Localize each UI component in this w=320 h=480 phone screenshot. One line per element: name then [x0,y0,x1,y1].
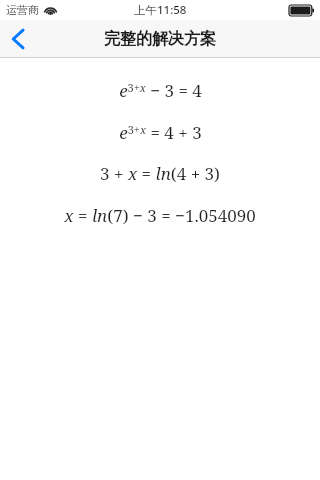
staticText: e3+x − 3 = 4 [119,79,202,99]
staticText: 3 + x = ln(4 + 3) [100,162,220,182]
staticText: 运营商 [6,3,39,17]
staticText: 完整的解决方案 [104,29,216,49]
button[interactable]: Back [0,20,44,58]
staticText: 上午11:58 [134,2,187,18]
staticText: x = ln(7) − 3 = −1.054090 [64,204,256,224]
staticText: e3+x = 4 + 3 [119,121,202,141]
